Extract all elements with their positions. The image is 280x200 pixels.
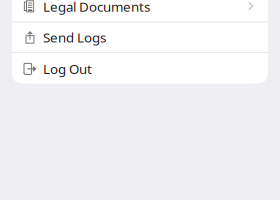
button[interactable]: Send Logs: [12, 22, 268, 52]
staticText: Legal Documents: [43, 0, 150, 15]
button[interactable]: Log Out: [12, 53, 268, 84]
button[interactable]: Legal Documents: [12, 0, 268, 21]
staticText: Log Out: [43, 60, 92, 78]
staticText: Send Logs: [43, 28, 106, 46]
